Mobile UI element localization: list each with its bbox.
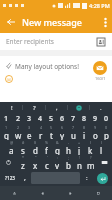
button[interactable]: Insert emoji <box>3 73 14 84</box>
button[interactable]: * <box>17 155 29 170</box>
staticText: j <box>78 145 81 155</box>
staticText: - <box>68 140 70 145</box>
button[interactable]: ; <box>63 155 74 170</box>
button[interactable]: & <box>52 140 63 155</box>
staticText: & <box>56 140 59 145</box>
button[interactable]: 8 <box>79 125 90 140</box>
button[interactable]: 2 <box>12 113 24 125</box>
staticText: # <box>22 140 25 145</box>
button[interactable]: ? <box>23 102 46 113</box>
button[interactable]: Backspace <box>96 155 112 170</box>
staticText: 6 <box>60 114 65 124</box>
staticText: : <box>86 174 88 182</box>
staticText: c <box>45 160 49 170</box>
button[interactable]: Send message <box>93 61 107 75</box>
button[interactable]: : <box>52 155 63 170</box>
button[interactable]: 0 <box>101 113 112 125</box>
button[interactable]: , <box>46 102 68 113</box>
staticText: ) <box>101 140 103 145</box>
staticText: n <box>77 160 82 170</box>
staticText: + <box>78 140 81 145</box>
button[interactable]: 9 <box>90 125 101 140</box>
staticText: 2 <box>17 125 20 130</box>
button[interactable]: Enter <box>97 173 108 184</box>
button[interactable]: 6 <box>57 113 68 125</box>
button[interactable]: , <box>19 172 30 184</box>
button[interactable]: 8 <box>79 113 90 125</box>
staticText: s <box>21 145 25 155</box>
button[interactable]: 9 <box>90 113 101 125</box>
button[interactable]: # <box>17 140 29 155</box>
staticText: 1 <box>5 125 8 130</box>
staticText: 160/1 <box>95 76 106 81</box>
button[interactable]: 2 <box>12 125 24 140</box>
button[interactable]: " <box>29 155 41 170</box>
button[interactable]: ? <box>85 155 96 170</box>
staticText: 0 <box>105 125 108 130</box>
button[interactable]: 7 <box>68 113 79 125</box>
staticText: 2 <box>16 114 21 124</box>
staticText: 3 <box>28 125 31 130</box>
staticText: ! <box>11 104 13 112</box>
staticText: p <box>104 130 109 140</box>
staticText: 9 <box>93 114 98 124</box>
button[interactable]: 4 <box>35 125 46 140</box>
staticText: 7 <box>71 114 76 124</box>
button[interactable]: + <box>74 140 85 155</box>
button[interactable]: Hide keyboard <box>0 186 28 200</box>
button[interactable]: ?123 <box>0 172 19 184</box>
button[interactable]: ' <box>41 155 52 170</box>
staticText: New message <box>22 16 82 28</box>
button[interactable]: 7 <box>68 125 79 140</box>
button[interactable]: ! <box>0 102 23 113</box>
button[interactable]: 1 <box>0 113 12 125</box>
staticText: Enter recipients <box>6 37 54 46</box>
button[interactable]: @ <box>5 140 17 155</box>
staticText: , <box>56 104 58 112</box>
button[interactable]: More options <box>98 11 112 33</box>
button[interactable]: 3 <box>24 113 35 125</box>
staticText: ( <box>90 140 92 145</box>
staticText: 3 <box>27 114 32 124</box>
button[interactable]: 4 <box>35 113 46 125</box>
button[interactable]: 5 <box>46 125 57 140</box>
staticText: ' <box>47 155 48 160</box>
button[interactable] <box>68 102 90 113</box>
button[interactable]: Back <box>0 11 22 33</box>
button[interactable]: Home <box>56 186 84 200</box>
button[interactable]: - <box>63 140 74 155</box>
button[interactable]: ( <box>85 140 96 155</box>
button[interactable]: Pick contacts <box>94 35 108 49</box>
staticText: * <box>22 155 24 160</box>
button[interactable]: % <box>41 140 52 155</box>
button[interactable]: Back <box>28 186 56 200</box>
staticText: z <box>21 160 25 170</box>
button[interactable]: Shift <box>0 155 17 170</box>
staticText: 8 <box>83 125 86 130</box>
button[interactable]: Recents <box>84 186 112 200</box>
staticText: 4:28 PM <box>89 2 110 9</box>
staticText: r <box>39 130 43 140</box>
staticText: x <box>33 160 38 170</box>
button[interactable]: 3 <box>24 125 35 140</box>
staticText: a <box>9 145 14 155</box>
staticText: v <box>55 160 60 170</box>
staticText: 1 <box>4 114 9 124</box>
button[interactable]: ! <box>74 155 85 170</box>
button[interactable]: Attach <box>3 60 14 71</box>
button[interactable]: 0 <box>101 125 112 140</box>
staticText: , <box>24 173 26 183</box>
staticText: f <box>45 145 48 155</box>
button[interactable]: 5 <box>46 113 57 125</box>
staticText: k <box>88 145 93 155</box>
staticText: 0 <box>104 114 109 124</box>
staticText: b <box>66 160 71 170</box>
button[interactable]: 1 <box>0 125 12 140</box>
button[interactable]: . <box>90 102 112 113</box>
button[interactable]: $ <box>29 140 41 155</box>
button[interactable]: ) <box>96 140 107 155</box>
button[interactable]: 6 <box>57 125 68 140</box>
staticText: q <box>4 130 9 140</box>
button[interactable]: : <box>81 172 92 184</box>
